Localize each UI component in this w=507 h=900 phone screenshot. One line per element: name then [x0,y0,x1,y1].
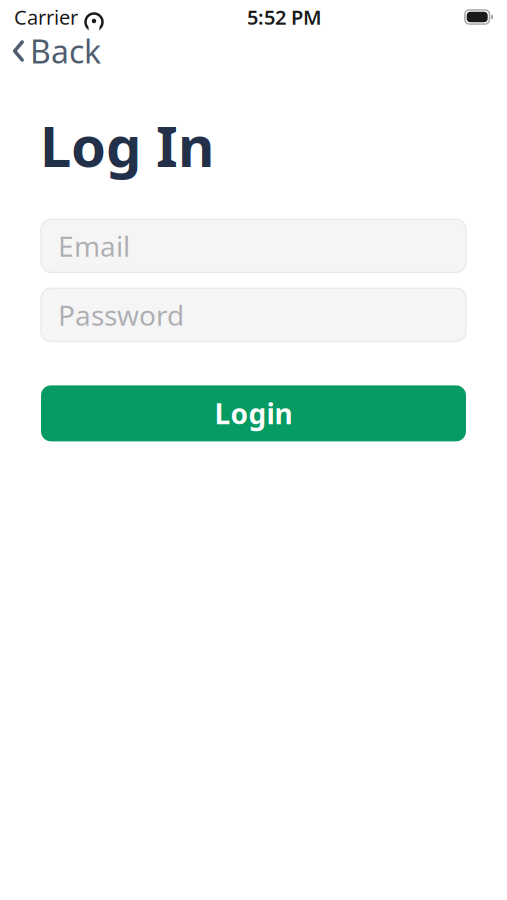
staticText: Log In [40,108,214,182]
staticText: Back [30,30,101,72]
staticText: Email [58,227,130,264]
staticText: Password [58,296,184,333]
staticText: Login [214,395,292,432]
button[interactable]: Login [41,385,466,441]
button[interactable]: Back [0,24,113,78]
staticText: 5:52 PM [247,4,322,30]
staticText: Carrier [14,4,78,30]
